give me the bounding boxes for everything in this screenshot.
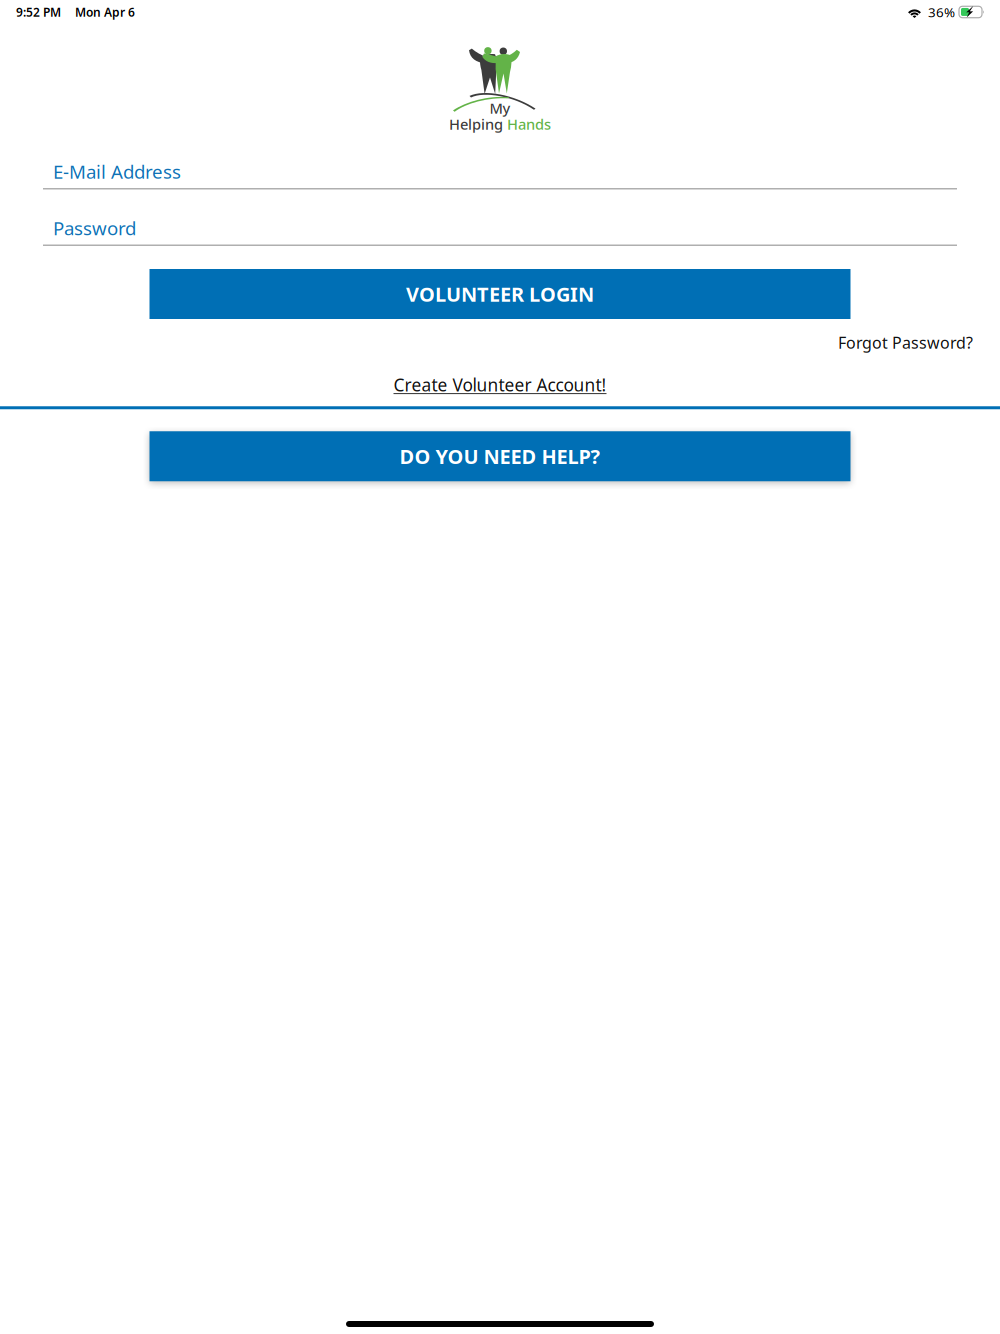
staticText: VOLUNTEER LOGIN [406,281,594,307]
button[interactable]: DO YOU NEED HELP? [149,431,850,481]
staticText: Password [53,216,136,240]
staticText: 36% [928,3,955,21]
staticText: DO YOU NEED HELP? [399,443,600,470]
staticText: Hands [507,114,551,134]
button[interactable]: Forgot Password? [0,328,1000,357]
staticText: Forgot Password? [838,332,973,353]
button[interactable]: VOLUNTEER LOGIN [149,269,850,319]
staticText: Mon Apr 6 [75,4,135,20]
button[interactable]: Password [43,211,957,246]
staticText: My [489,98,510,118]
staticText: E-Mail Address [53,159,181,184]
button[interactable]: Create Volunteer Account! [393,370,606,399]
staticText: Helping [449,114,507,134]
staticText: 9:52 PM [16,4,61,20]
button[interactable]: E-Mail Address [43,155,957,189]
staticText: Create Volunteer Account! [393,373,606,396]
